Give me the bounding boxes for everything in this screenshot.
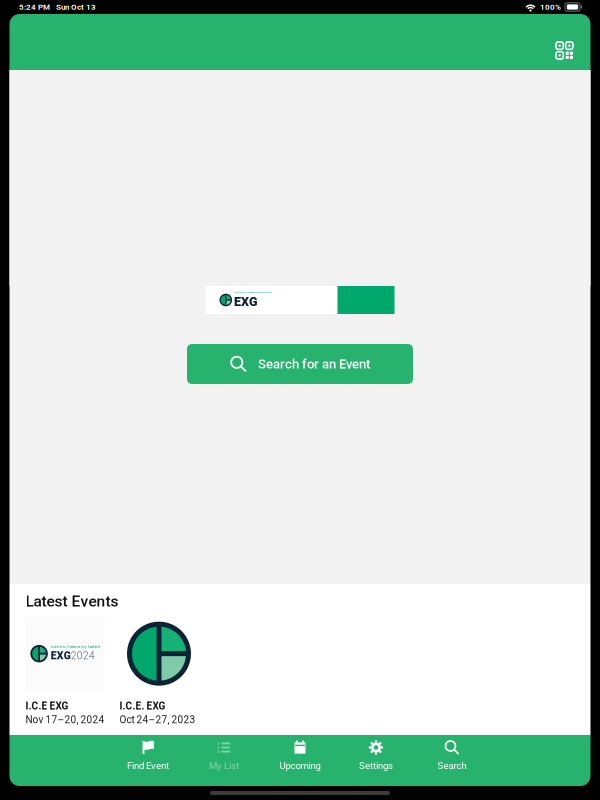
staticText: 100% <box>540 2 561 12</box>
button[interactable]: My List <box>186 735 262 786</box>
staticText: Sun Oct 13 <box>56 2 96 12</box>
button[interactable]: Scan QR code <box>542 28 586 72</box>
button[interactable]: Find Event <box>110 735 186 786</box>
staticText: 2024 <box>71 649 95 662</box>
staticText: Upcoming <box>279 760 320 771</box>
staticText: My List <box>209 760 239 771</box>
button[interactable]: Search for an Event <box>187 344 413 384</box>
staticText: Latest Events <box>25 592 118 610</box>
staticText: Settings <box>359 760 393 771</box>
staticText: I.C.E EXG <box>25 700 68 712</box>
button[interactable]: Institute for Credentialing Excellence <box>25 617 104 726</box>
staticText: Nov 17–20, 2024 <box>25 714 104 726</box>
staticText: Search <box>437 760 466 771</box>
staticText: Find Event <box>127 760 169 771</box>
button[interactable]: Upcoming <box>262 735 338 786</box>
staticText: EXG <box>234 294 258 309</box>
staticText: EXG <box>51 649 71 662</box>
button[interactable]: Settings <box>338 735 414 786</box>
staticText: Search for an Event <box>258 356 370 372</box>
button[interactable]: Search <box>414 735 490 786</box>
button[interactable]: I.C.E. EXG <box>119 617 198 726</box>
staticText: Institute for Credentialing Excellence <box>234 291 272 294</box>
staticText: 5:24 PM <box>19 2 50 12</box>
staticText: Oct 24–27, 2023 <box>119 714 195 726</box>
staticText: I.C.E. EXG <box>119 700 165 712</box>
staticText: Institute for Credentialing Excellence <box>51 645 100 649</box>
